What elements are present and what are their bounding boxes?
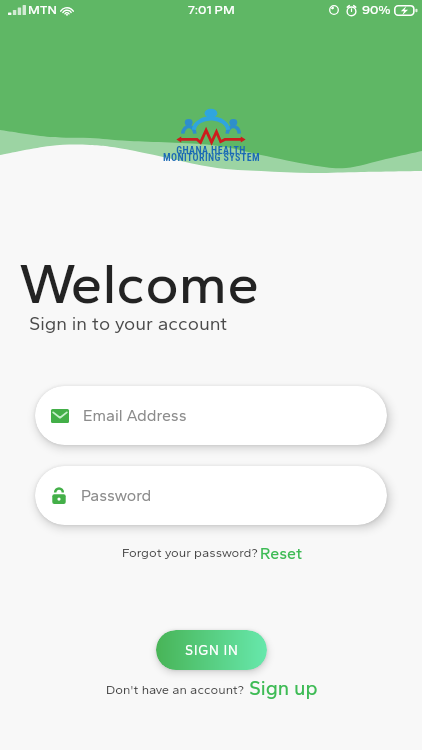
button[interactable]: Password (35, 466, 387, 525)
staticText: SIGN IN (185, 642, 239, 658)
staticText: Sign up (249, 676, 318, 700)
other: Password (51, 487, 67, 505)
button[interactable]: Email (35, 386, 387, 445)
staticText: 90% (362, 2, 391, 18)
other: Email (51, 409, 69, 423)
staticText: MTN (28, 2, 57, 18)
staticText: Welcome (19, 249, 260, 317)
button[interactable]: SIGN IN (156, 630, 267, 670)
staticText: Email Address (83, 406, 187, 425)
staticText: Sign in to your account (29, 312, 228, 335)
staticText: 7:01 PM (188, 2, 235, 18)
button[interactable]: Reset (260, 544, 303, 563)
staticText: Password (81, 486, 152, 505)
staticText: Forgot your password? (122, 545, 258, 561)
staticText: Reset (260, 544, 303, 563)
button[interactable]: Sign up (249, 676, 318, 700)
staticText: Don't have an account? (106, 682, 244, 698)
staticText: MONITORING SYSTEM (163, 152, 260, 164)
staticText: GHANA HEALTH (176, 145, 246, 157)
